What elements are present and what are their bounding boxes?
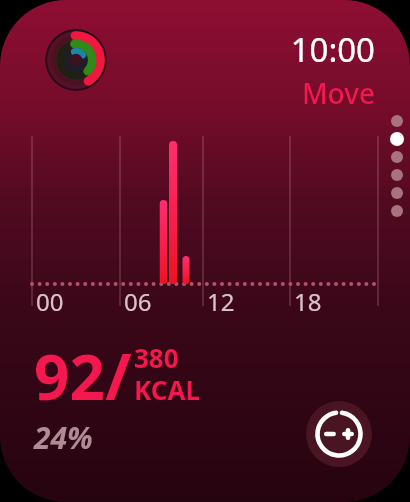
staticText: 10:00 (290, 27, 375, 72)
button[interactable]: Activity rings (45, 29, 107, 91)
staticText: 380 (134, 340, 179, 375)
button[interactable]: 00 (0, 126, 410, 291)
staticText: 12 (207, 285, 235, 318)
staticText: 18 (294, 285, 322, 318)
staticText: 00 (36, 285, 64, 318)
staticText: 92 (34, 334, 105, 418)
staticText: / (105, 332, 132, 419)
staticText: Move (301, 74, 375, 112)
button[interactable]: Adjust goal (306, 401, 372, 467)
staticText: 06 (124, 285, 152, 318)
staticText: 24% (34, 417, 93, 458)
staticText: KCAL (134, 372, 200, 407)
